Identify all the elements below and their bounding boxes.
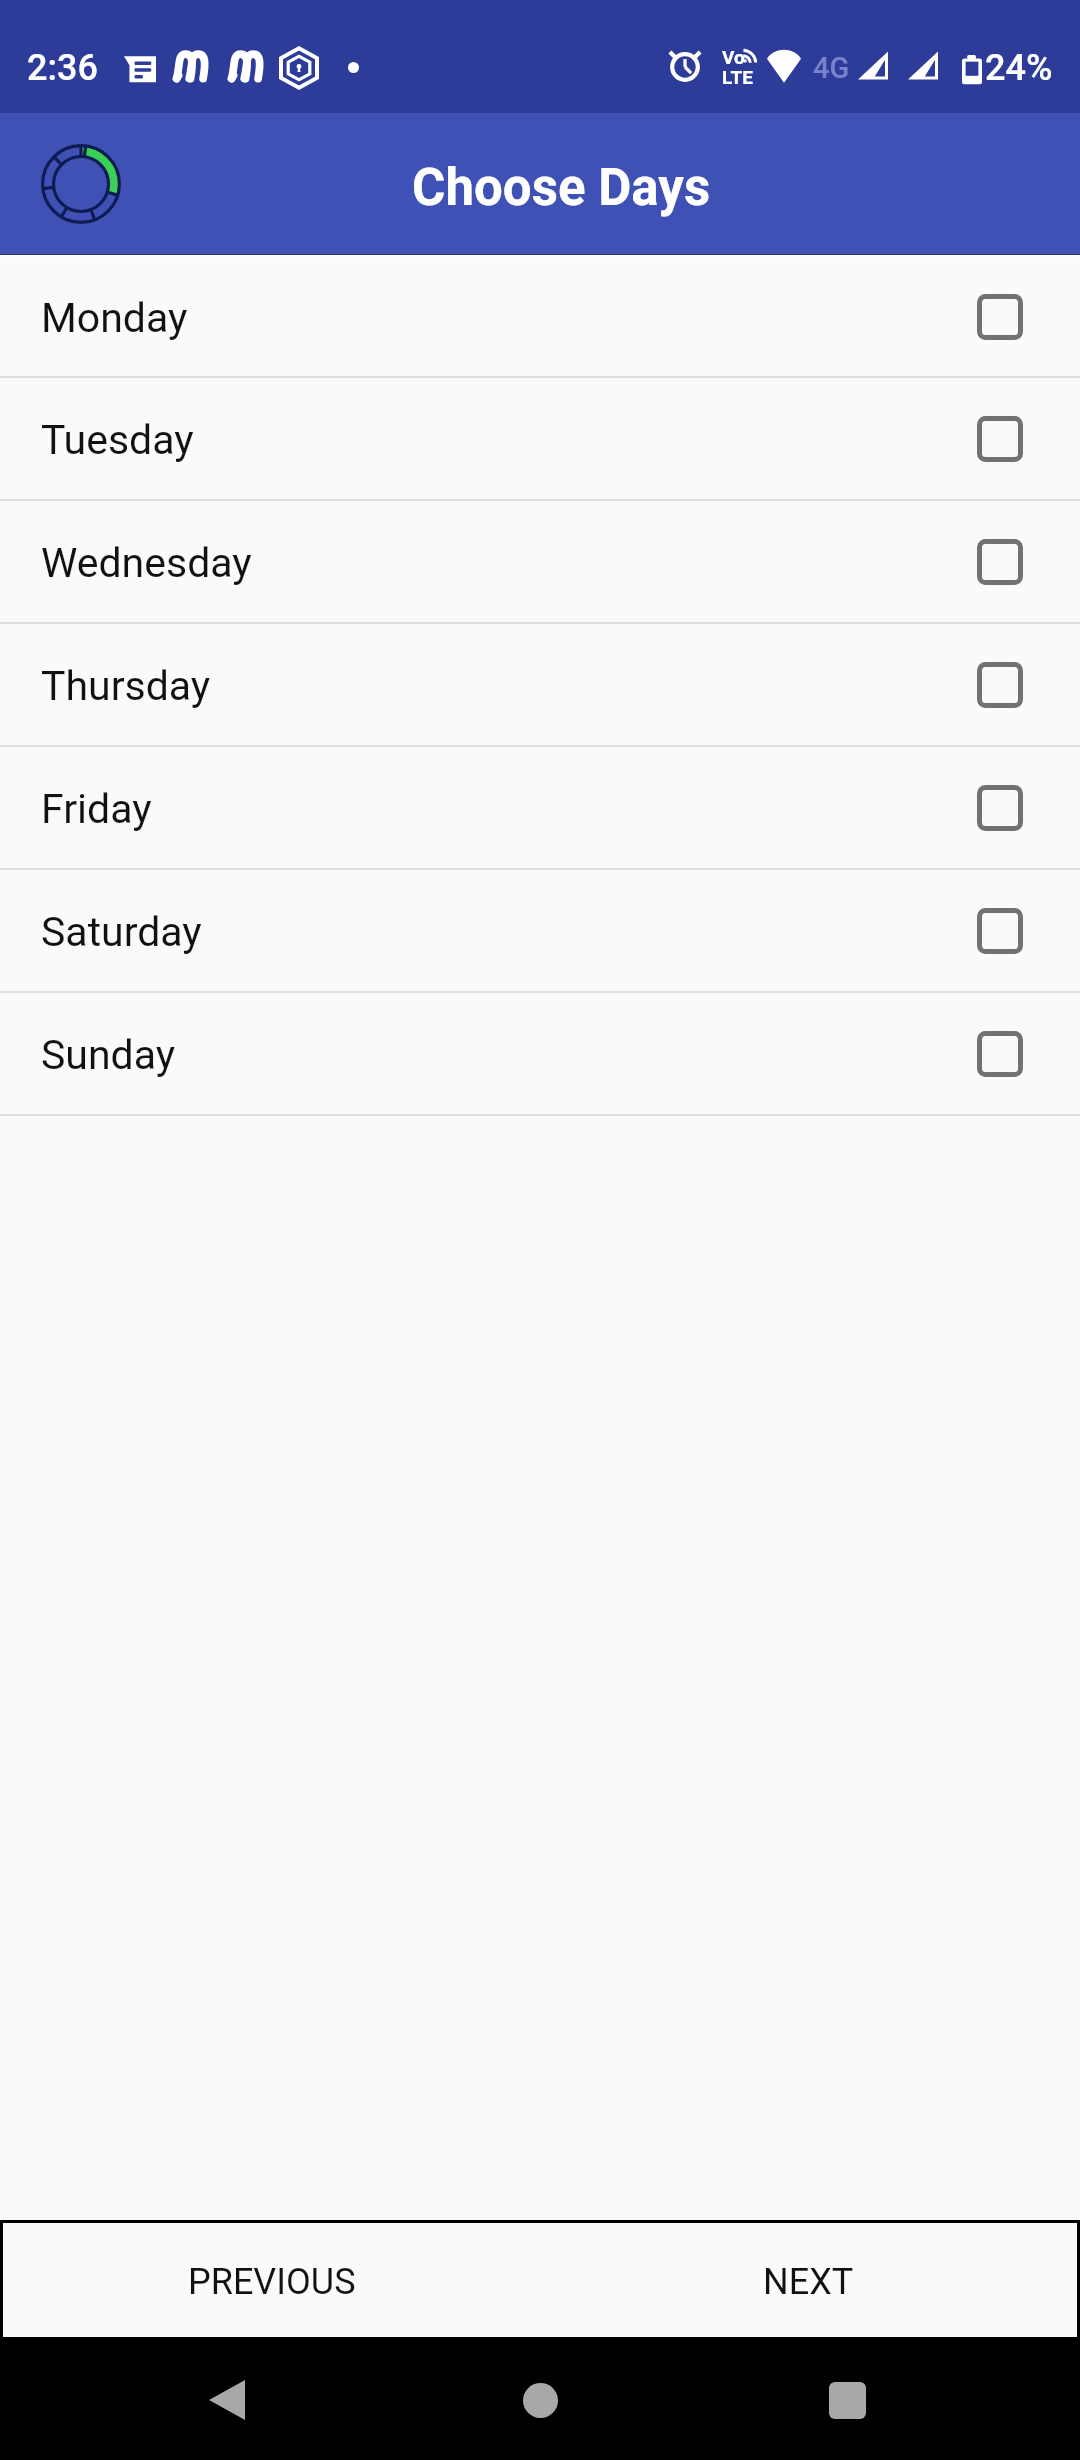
button[interactable]: App logo	[41, 144, 121, 224]
staticText: Saturday	[41, 908, 202, 956]
staticText: 24%	[985, 47, 1053, 89]
staticText: LTE	[722, 66, 753, 88]
button[interactable]: Home	[493, 2353, 587, 2447]
staticText: NEXT	[763, 2261, 854, 2303]
staticText: 4G	[813, 51, 850, 85]
button[interactable]: PREVIOUS	[3, 2223, 540, 2337]
button[interactable]: Wednesday	[0, 501, 1080, 622]
button[interactable]: Tuesday	[0, 378, 1080, 499]
button[interactable]: Recent apps	[800, 2353, 894, 2447]
staticText: Friday	[41, 785, 152, 833]
button[interactable]: Sunday	[0, 993, 1080, 1114]
staticText: Wednesday	[41, 539, 252, 587]
button[interactable]: Thursday	[0, 624, 1080, 745]
button[interactable]: NEXT	[540, 2223, 1077, 2337]
staticText: PREVIOUS	[188, 2261, 356, 2303]
button[interactable]: Friday	[0, 747, 1080, 868]
staticText: Sunday	[41, 1031, 176, 1079]
button[interactable]: Saturday	[0, 870, 1080, 991]
staticText: Choose Days	[412, 158, 711, 218]
button[interactable]: Back	[180, 2353, 274, 2447]
button[interactable]: Monday	[0, 257, 1080, 376]
staticText: Thursday	[41, 662, 211, 710]
staticText: Tuesday	[41, 416, 194, 464]
staticText: Monday	[41, 294, 188, 342]
staticText: Vo	[722, 46, 745, 68]
staticText: 2:36	[27, 47, 98, 89]
